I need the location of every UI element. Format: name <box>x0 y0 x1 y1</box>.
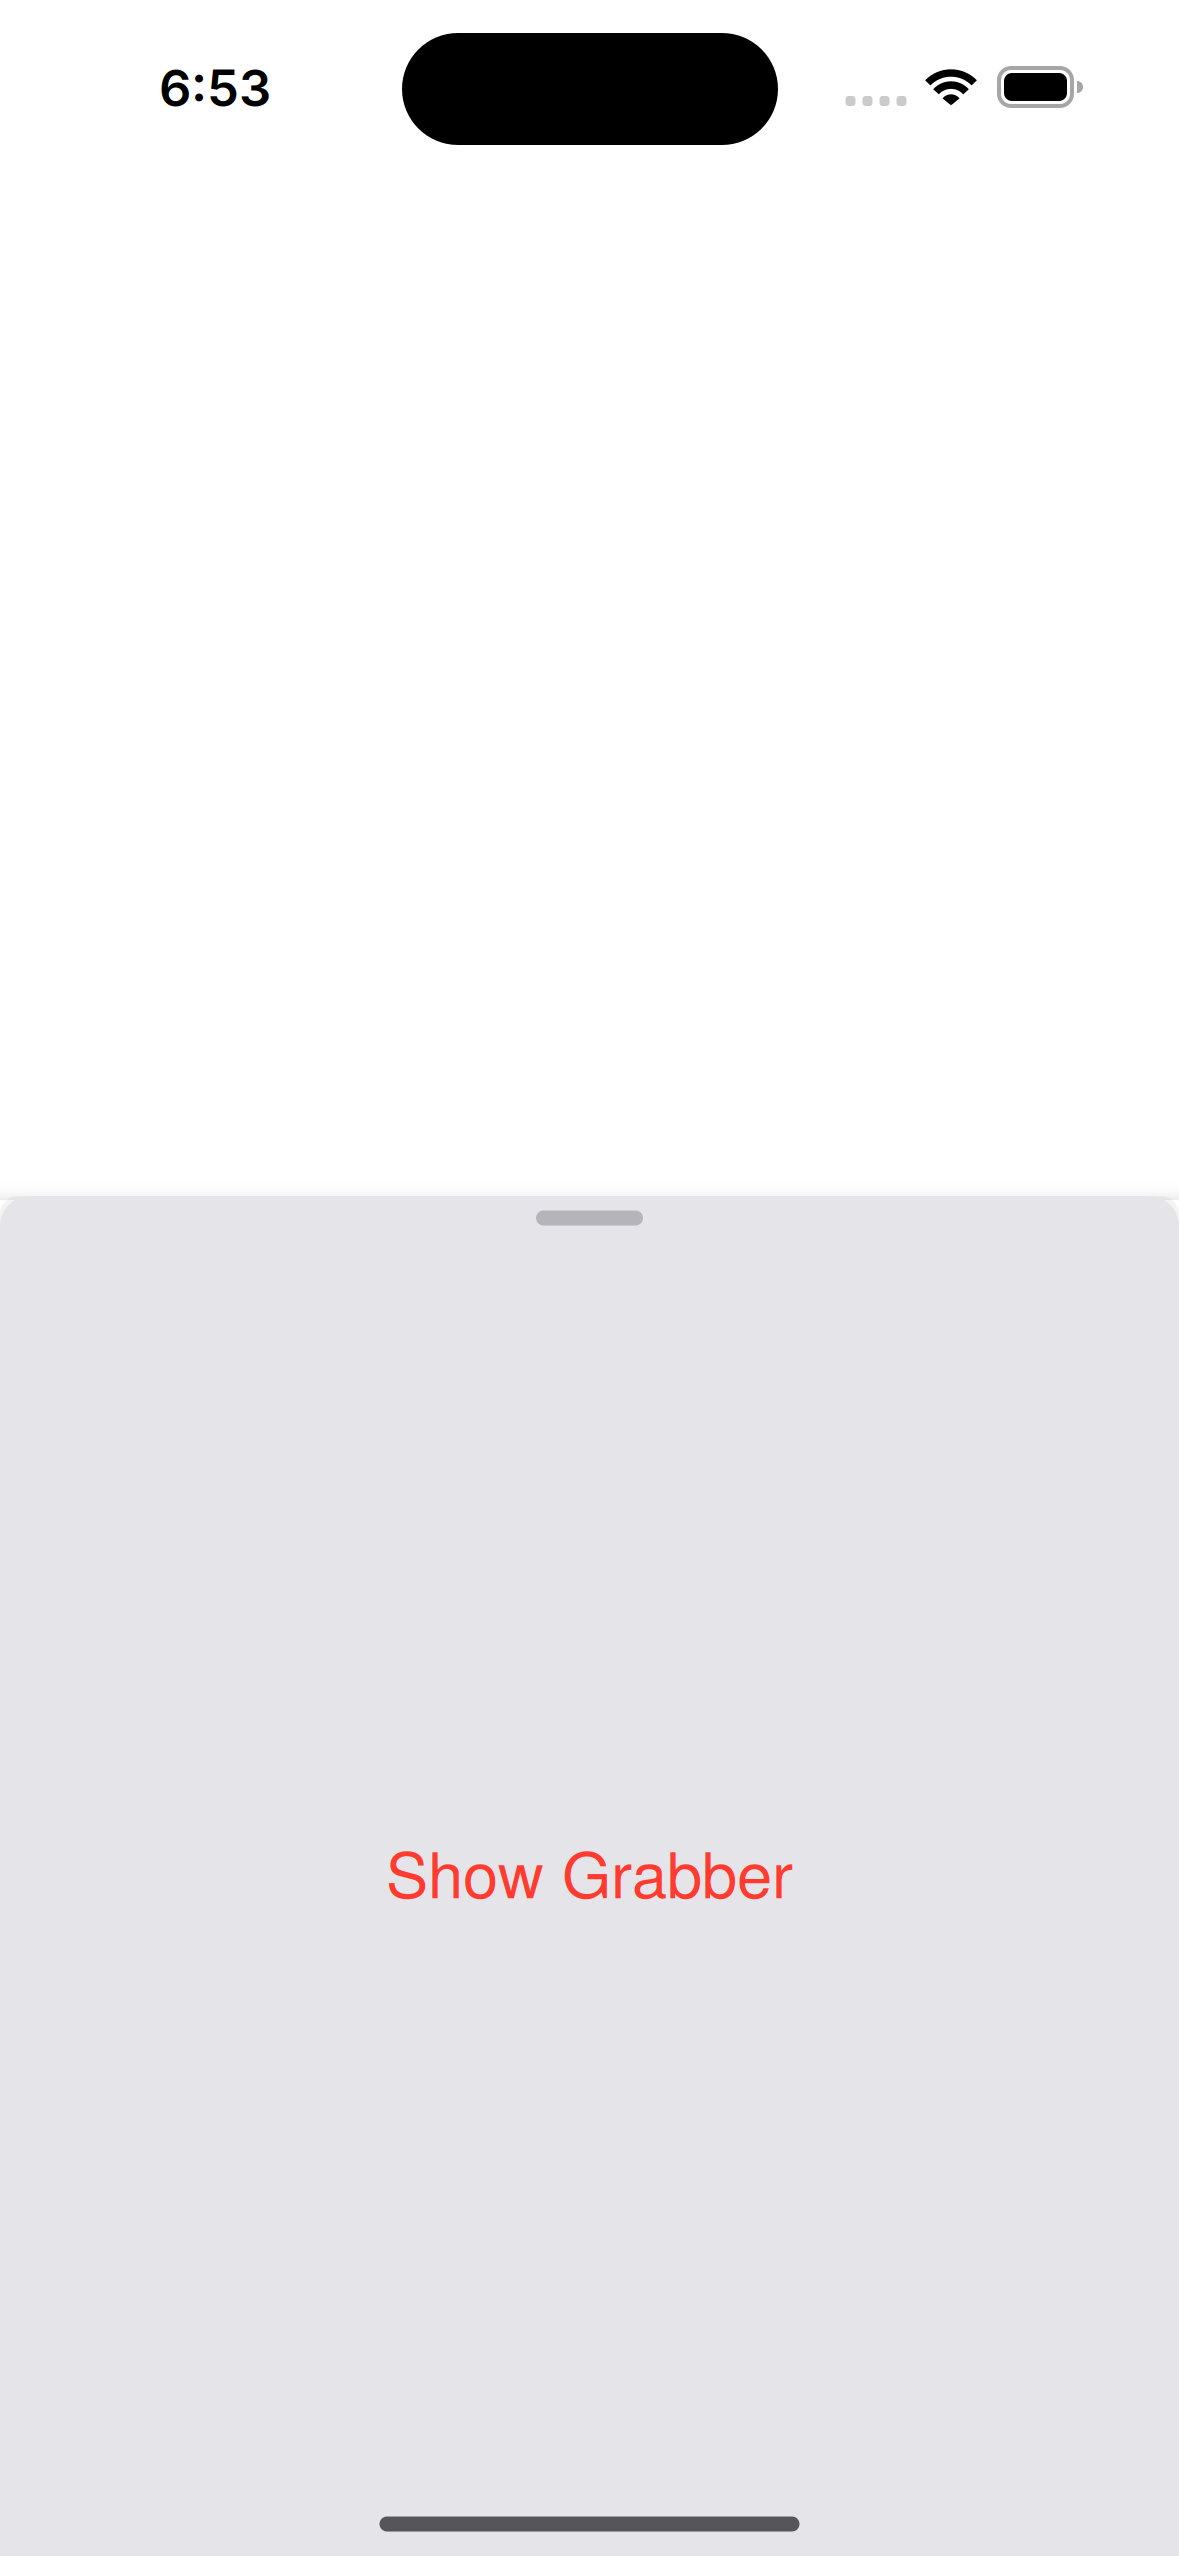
staticText: 6:53 <box>159 57 271 119</box>
staticText: Show Grabber <box>386 1826 793 1916</box>
button[interactable]: Show Grabber <box>309 1811 869 1931</box>
